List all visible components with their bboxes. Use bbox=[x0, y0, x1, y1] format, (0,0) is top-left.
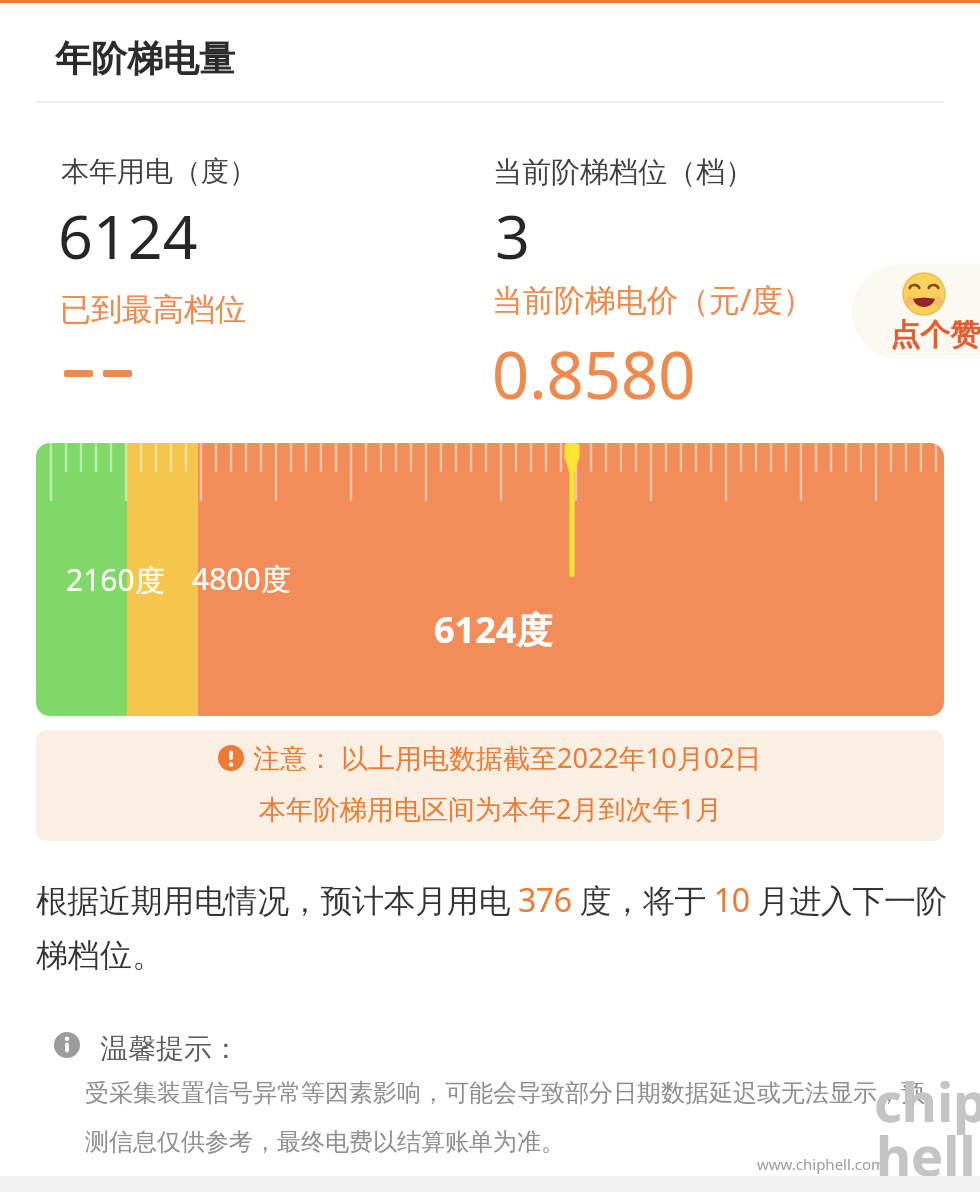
staticText: 3 bbox=[495, 194, 530, 277]
staticText: 温馨提示： bbox=[100, 1031, 240, 1066]
staticText: 梯档位。 bbox=[36, 935, 164, 975]
staticText: 4800度 bbox=[192, 558, 291, 599]
staticText: 根据近期用电情况，预计本月用电 376 度，将于 10 月进入下一阶 bbox=[36, 878, 948, 922]
staticText: 6124 bbox=[58, 194, 198, 277]
staticText: 年阶梯电量 bbox=[55, 36, 235, 81]
staticText: 受采集装置信号异常等因素影响，可能会导致部分日期数据延迟或无法显示，预 bbox=[85, 1078, 925, 1108]
staticText: 已到最高档位 bbox=[60, 290, 246, 329]
staticText: 当前阶梯电价（元/度） bbox=[492, 278, 814, 320]
staticText: 注意： 以上用电数据截至2022年10月02日 bbox=[253, 739, 762, 776]
staticText: 6124度 bbox=[434, 605, 553, 654]
staticText: www.chiphell.com bbox=[757, 1154, 886, 1174]
staticText: 本年用电（度） bbox=[61, 154, 257, 189]
staticText: 2160度 bbox=[66, 559, 165, 600]
staticText: 当前阶梯档位（档） bbox=[493, 154, 754, 191]
button[interactable]: 点个赞 bbox=[852, 264, 980, 359]
staticText: 测信息仅供参考，最终电费以结算账单为准。 bbox=[85, 1127, 565, 1157]
staticText: chip bbox=[874, 1064, 980, 1138]
staticText: 本年阶梯用电区间为本年2月到次年1月 bbox=[259, 790, 722, 827]
staticText: hell bbox=[876, 1118, 976, 1192]
staticText: 点个赞 bbox=[890, 316, 980, 354]
staticText: 0.8580 bbox=[492, 330, 696, 419]
